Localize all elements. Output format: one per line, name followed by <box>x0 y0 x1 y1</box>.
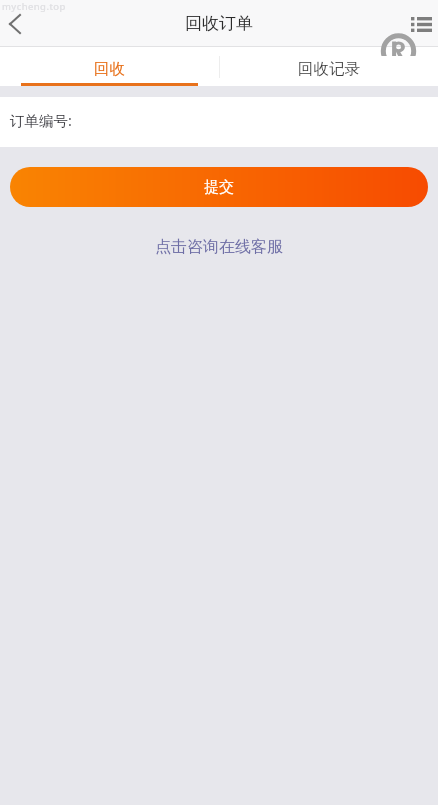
button[interactable]: 回收记录 <box>219 47 438 86</box>
button[interactable]: Menu <box>398 0 438 47</box>
button[interactable]: Back <box>0 0 44 47</box>
staticText: 提交 <box>204 178 234 197</box>
staticText: 订单编号: <box>10 110 72 130</box>
button[interactable]: 点击咨询在线客服 <box>0 233 438 261</box>
staticText: mycheng.top <box>2 0 66 13</box>
staticText: 点击咨询在线客服 <box>155 237 283 257</box>
staticText: 回收 <box>94 59 125 79</box>
button[interactable]: 回收 <box>0 47 219 86</box>
staticText: 回收记录 <box>298 59 360 79</box>
staticText: 回收订单 <box>185 13 253 34</box>
button[interactable]: 提交 <box>10 167 428 207</box>
